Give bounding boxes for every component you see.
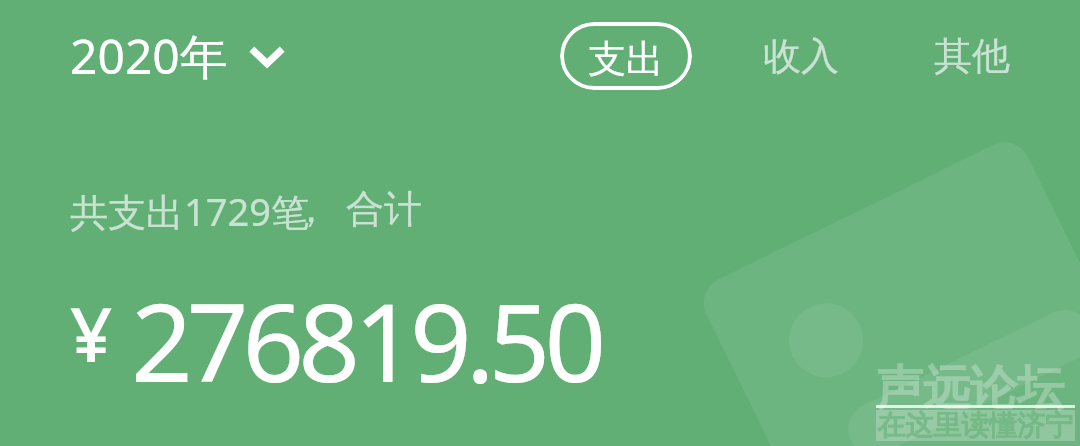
staticText: ¥ xyxy=(70,283,113,384)
staticText: 支出 xyxy=(588,35,664,83)
button[interactable]: 支出 xyxy=(560,22,692,90)
other: Select year xyxy=(248,37,286,75)
staticText: ， xyxy=(292,185,330,233)
staticText: 共支出1729笔 xyxy=(70,185,309,237)
staticText: 收入 xyxy=(763,32,839,80)
staticText: 在这里读懂济宁 xyxy=(877,408,1076,439)
staticText: 2020年 xyxy=(70,23,228,89)
button[interactable]: 收入 xyxy=(735,22,867,90)
staticText: 合计 xyxy=(346,185,422,233)
staticText: 其他 xyxy=(934,32,1010,80)
staticText: 声远论坛 xyxy=(876,359,1064,418)
button[interactable]: 2020年, change year xyxy=(58,17,298,95)
button[interactable]: 其他 xyxy=(906,22,1038,90)
staticText: 276819.50 xyxy=(131,267,601,414)
